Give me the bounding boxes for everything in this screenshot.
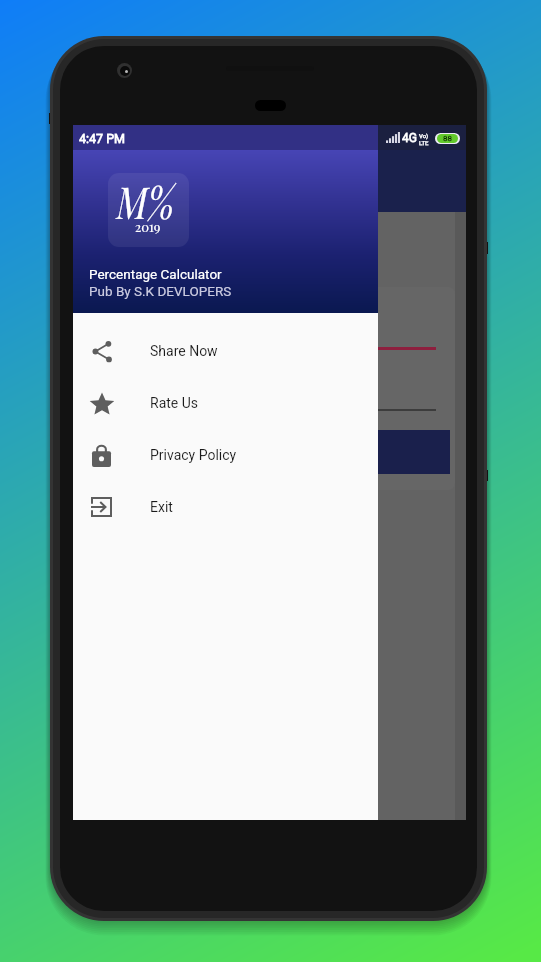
staticText: 88 bbox=[443, 134, 452, 143]
button[interactable]: Privacy Policy bbox=[73, 429, 378, 481]
button[interactable]: Rate Us bbox=[73, 377, 378, 429]
staticText: 4:47 PM bbox=[79, 131, 126, 146]
staticText: Rate Us bbox=[150, 395, 199, 411]
staticText: 2019 bbox=[135, 218, 161, 235]
staticText: Percentage Calculator bbox=[89, 266, 222, 282]
button[interactable]: Share Now bbox=[73, 325, 378, 377]
staticText: Exit bbox=[150, 499, 173, 515]
staticText: Privacy Policy bbox=[150, 447, 237, 463]
staticText: Share Now bbox=[150, 343, 218, 359]
staticText: LTE bbox=[419, 139, 429, 146]
staticText: Pub By S.K DEVLOPERS bbox=[89, 283, 232, 299]
staticText: M% bbox=[114, 173, 171, 230]
staticText: Vo) bbox=[419, 132, 429, 139]
button[interactable]: Exit bbox=[73, 481, 378, 533]
staticText: 4G bbox=[402, 131, 417, 145]
